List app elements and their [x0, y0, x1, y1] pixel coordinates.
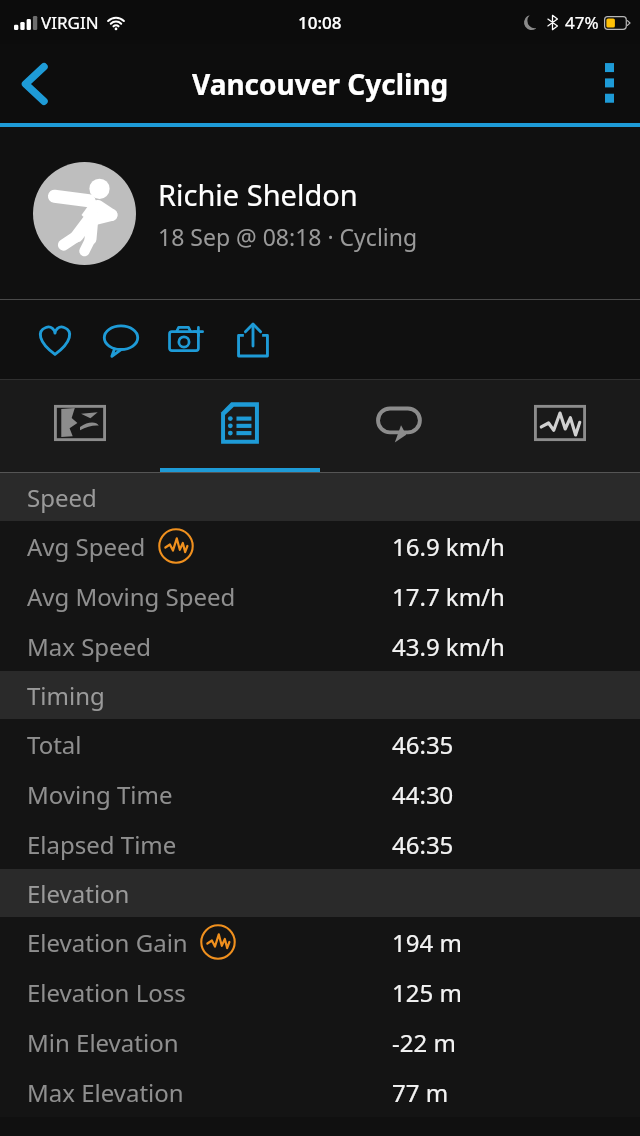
button[interactable]: Max Elevation: [0, 1067, 640, 1117]
staticText: 17.7 km/h: [392, 580, 505, 613]
button[interactable]: Add photo: [154, 305, 220, 375]
staticText: 46:35: [392, 828, 454, 861]
staticText: 194 m: [392, 926, 462, 959]
staticText: 47%: [565, 11, 599, 34]
button[interactable]: Elevation Gain: [0, 917, 640, 967]
staticText: Total: [27, 728, 82, 761]
staticText: 77 m: [392, 1076, 449, 1109]
staticText: Avg Moving Speed: [27, 580, 236, 613]
staticText: 10:08: [298, 11, 342, 34]
button[interactable]: Max Speed: [0, 621, 640, 671]
staticText: 43.9 km/h: [392, 630, 505, 663]
button[interactable]: Avg Moving Speed: [0, 571, 640, 621]
staticText: -22 m: [392, 1026, 456, 1059]
button[interactable]: Avg Speed: [0, 521, 640, 571]
staticText: Avg Speed: [27, 530, 146, 563]
staticText: Vancouver Cycling: [192, 65, 449, 103]
staticText: Elapsed Time: [27, 828, 177, 861]
staticText: VIRGIN: [41, 11, 99, 34]
button[interactable]: Elapsed Time: [0, 819, 640, 869]
staticText: Speed: [27, 481, 97, 514]
staticText: 46:35: [392, 728, 454, 761]
button[interactable]: More options: [578, 53, 640, 115]
staticText: Max Speed: [27, 630, 151, 663]
staticText: 18 Sep @ 08:18 · Cycling: [158, 221, 418, 252]
staticText: Elevation Gain: [27, 926, 188, 959]
staticText: 16.9 km/h: [392, 530, 505, 563]
button[interactable]: Min Elevation: [0, 1017, 640, 1067]
staticText: Timing: [27, 679, 105, 712]
button[interactable]: Charts: [480, 380, 640, 473]
staticText: 44:30: [392, 778, 454, 811]
button[interactable]: Back: [0, 50, 68, 118]
button[interactable]: Like: [22, 305, 88, 375]
staticText: 125 m: [392, 976, 462, 1009]
button[interactable]: Map: [0, 380, 160, 473]
button[interactable]: Share: [220, 305, 286, 375]
button[interactable]: Details: [160, 380, 320, 473]
button[interactable]: Comment: [88, 305, 154, 375]
button[interactable]: Total: [0, 719, 640, 769]
staticText: Max Elevation: [27, 1076, 184, 1109]
staticText: Moving Time: [27, 778, 173, 811]
button[interactable]: Laps: [320, 380, 480, 473]
staticText: Elevation Loss: [27, 976, 186, 1009]
button[interactable]: Elevation Loss: [0, 967, 640, 1017]
button[interactable]: Moving Time: [0, 769, 640, 819]
staticText: Elevation: [27, 877, 130, 910]
staticText: Min Elevation: [27, 1026, 179, 1059]
staticText: Richie Sheldon: [158, 175, 358, 214]
